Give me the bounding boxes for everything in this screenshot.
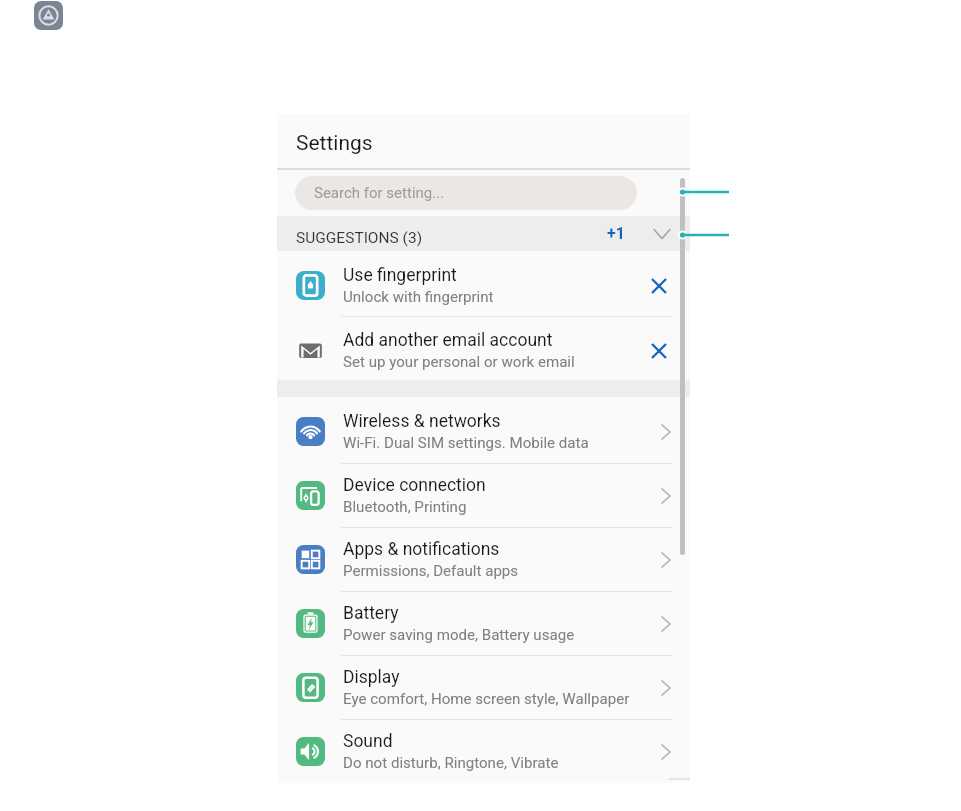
button[interactable]: Sound bbox=[277, 720, 690, 783]
staticText: Add another email account bbox=[343, 330, 553, 351]
staticText: Set up your personal or work email bbox=[343, 353, 575, 371]
button[interactable]: Device connection bbox=[277, 464, 690, 527]
staticText: Sound bbox=[343, 731, 393, 752]
staticText: Eye comfort, Home screen style, Wallpape… bbox=[343, 690, 630, 708]
staticText: Display bbox=[343, 667, 400, 688]
staticText: Unlock with fingerprint bbox=[343, 288, 494, 306]
staticText: +1 bbox=[607, 224, 625, 243]
staticText: Do not disturb, Ringtone, Vibrate bbox=[343, 754, 559, 772]
button[interactable]: Display bbox=[277, 656, 690, 719]
staticText: Device connection bbox=[343, 475, 486, 496]
staticText: Bluetooth, Printing bbox=[343, 498, 467, 516]
staticText: Wi-Fi. Dual SIM settings. Mobile data bbox=[343, 434, 589, 452]
button[interactable]: Add another email account bbox=[277, 319, 690, 382]
staticText: Permissions, Default apps bbox=[343, 562, 519, 580]
staticText: Battery bbox=[343, 603, 399, 624]
staticText: Apps & notifications bbox=[343, 539, 500, 560]
staticText: SUGGESTIONS (3) bbox=[296, 229, 423, 247]
button[interactable]: Use fingerprint bbox=[277, 253, 690, 318]
button[interactable]: Dismiss suggestion bbox=[642, 334, 676, 368]
staticText: Power saving mode, Battery usage bbox=[343, 626, 575, 644]
button[interactable]: Search for setting... bbox=[295, 176, 637, 210]
staticText: Use fingerprint bbox=[343, 265, 457, 286]
button[interactable]: Apps & notifications bbox=[277, 528, 690, 591]
staticText: Search for setting... bbox=[314, 184, 445, 202]
button[interactable]: SUGGESTIONS (3) bbox=[277, 216, 690, 251]
button[interactable]: Wireless & networks bbox=[277, 400, 690, 463]
button[interactable]: Battery bbox=[277, 592, 690, 655]
staticText: Settings bbox=[296, 131, 373, 156]
button[interactable]: Dismiss suggestion bbox=[642, 269, 676, 303]
staticText: Wireless & networks bbox=[343, 411, 501, 432]
button[interactable]: Settings app icon bbox=[34, 1, 63, 30]
